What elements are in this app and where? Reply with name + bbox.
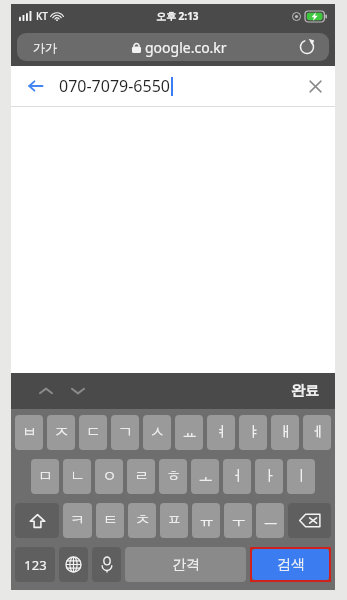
staticText: ㅅ bbox=[150, 423, 165, 442]
other: Change keyboard bbox=[57, 547, 90, 582]
button[interactable]: ㅁ bbox=[31, 459, 59, 494]
staticText: ㅑ bbox=[246, 423, 261, 442]
button[interactable]: ㅔ bbox=[303, 415, 331, 450]
staticText: ㅏ bbox=[262, 467, 277, 486]
staticText: ㅗ bbox=[198, 467, 213, 486]
button[interactable] bbox=[288, 503, 331, 538]
button[interactable]: ㅠ bbox=[192, 503, 220, 538]
button[interactable]: ㅎ bbox=[159, 459, 187, 494]
button[interactable] bbox=[92, 547, 121, 582]
staticText: ㅕ bbox=[214, 423, 229, 442]
other: Voice input bbox=[90, 547, 123, 582]
button[interactable]: ㄴ bbox=[63, 459, 91, 494]
button[interactable]: ㅈ bbox=[47, 415, 75, 450]
button[interactable]: Next field bbox=[65, 378, 91, 404]
staticText: 간격 bbox=[172, 556, 200, 574]
button[interactable]: 완료 bbox=[291, 382, 319, 400]
staticText: ㅋ bbox=[70, 511, 85, 530]
button[interactable]: ㅓ bbox=[223, 459, 251, 494]
staticText: ㅔ bbox=[310, 423, 325, 442]
button[interactable]: ㅕ bbox=[207, 415, 235, 450]
button[interactable]: Text size options bbox=[17, 33, 73, 61]
button[interactable]: ㅂ bbox=[15, 415, 43, 450]
staticText: ㅎ bbox=[166, 467, 181, 486]
staticText: 가가 bbox=[33, 40, 57, 55]
button[interactable]: ㅑ bbox=[239, 415, 267, 450]
button[interactable]: ㄷ bbox=[79, 415, 107, 450]
staticText: ㅛ bbox=[182, 423, 197, 442]
button[interactable]: 검색 bbox=[252, 549, 329, 580]
staticText: ㄷ bbox=[86, 423, 101, 442]
staticText: 오후 2:13 bbox=[156, 9, 199, 23]
button[interactable] bbox=[59, 547, 88, 582]
staticText: ㅁ bbox=[38, 467, 53, 486]
staticText: ㅜ bbox=[231, 511, 246, 530]
button[interactable]: ㅐ bbox=[271, 415, 299, 450]
staticText: KT bbox=[36, 9, 48, 23]
button[interactable]: Back bbox=[11, 66, 335, 106]
button[interactable]: Text size options bbox=[17, 33, 329, 61]
button[interactable]: ㄹ bbox=[127, 459, 155, 494]
button[interactable]: ㅡ bbox=[256, 503, 284, 538]
staticText: ㅣ bbox=[294, 467, 309, 486]
staticText: google.co.kr bbox=[145, 38, 227, 57]
button[interactable]: ㄱ bbox=[111, 415, 139, 450]
button[interactable]: 간격 bbox=[125, 547, 246, 582]
button[interactable]: ㅋ bbox=[63, 503, 92, 538]
staticText: ㅐ bbox=[278, 423, 293, 442]
button[interactable]: ㅊ bbox=[128, 503, 156, 538]
button[interactable]: ㅅ bbox=[143, 415, 171, 450]
button[interactable] bbox=[15, 503, 59, 538]
staticText: ㅓ bbox=[230, 467, 245, 486]
button[interactable]: Clear bbox=[295, 66, 335, 106]
button[interactable]: ㅌ bbox=[96, 503, 124, 538]
button[interactable]: ㅗ bbox=[191, 459, 219, 494]
button[interactable]: 123 bbox=[15, 547, 55, 582]
staticText: 검색 bbox=[277, 556, 305, 574]
button[interactable]: Back bbox=[11, 66, 59, 106]
staticText: ㄹ bbox=[134, 467, 149, 486]
button[interactable]: Previous field bbox=[33, 378, 59, 404]
staticText: ㅠ bbox=[199, 511, 214, 530]
staticText: ㅡ bbox=[263, 511, 278, 530]
button[interactable]: ㅜ bbox=[224, 503, 252, 538]
staticText: ㅈ bbox=[54, 423, 69, 442]
staticText: 070-7079-6550 bbox=[59, 75, 170, 97]
staticText: ㄴ bbox=[70, 467, 85, 486]
button[interactable]: Reload bbox=[285, 33, 329, 61]
staticText: ㅌ bbox=[103, 511, 118, 530]
staticText: ㅂ bbox=[22, 423, 37, 442]
button[interactable]: ㅇ bbox=[95, 459, 123, 494]
staticText: ㄱ bbox=[118, 423, 133, 442]
staticText: 완료 bbox=[291, 382, 319, 400]
button[interactable]: ㅣ bbox=[287, 459, 315, 494]
button[interactable]: ㅏ bbox=[255, 459, 283, 494]
staticText: ㅊ bbox=[135, 511, 150, 530]
staticText: 123 bbox=[24, 556, 47, 574]
staticText: ㅍ bbox=[167, 511, 182, 530]
button[interactable]: ㅍ bbox=[160, 503, 188, 538]
button[interactable]: ㅛ bbox=[175, 415, 203, 450]
staticText: ㅇ bbox=[102, 467, 117, 486]
